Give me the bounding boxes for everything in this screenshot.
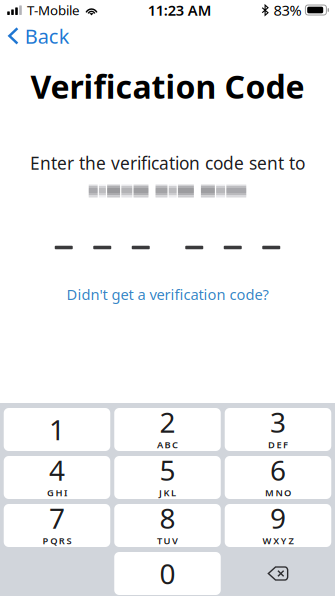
button[interactable]: Delete — [225, 552, 331, 595]
staticText: 7 — [49, 499, 65, 537]
button[interactable]: 2 — [114, 408, 221, 451]
button[interactable]: 6 — [225, 456, 331, 499]
staticText: 8 — [159, 499, 175, 537]
staticText: PQRS — [43, 534, 71, 547]
staticText: 3 — [270, 403, 286, 441]
staticText: DEF — [268, 438, 288, 451]
staticText: ABC — [157, 438, 178, 451]
button[interactable]: 4 — [4, 456, 110, 499]
button[interactable]: 5 — [114, 456, 221, 499]
button[interactable]: 8 — [114, 504, 221, 547]
staticText: GHI — [47, 486, 67, 499]
button[interactable]: 3 — [225, 408, 331, 451]
staticText: 4 — [49, 451, 65, 489]
button[interactable]: 9 — [225, 504, 331, 547]
button[interactable]: 1 — [4, 408, 110, 451]
staticText: MNO — [265, 486, 291, 499]
staticText: JKL — [159, 486, 176, 499]
staticText: WXYZ — [263, 534, 293, 547]
staticText: 5 — [159, 451, 175, 489]
staticText: 2 — [159, 403, 175, 441]
staticText: 11:23 AM — [148, 0, 212, 20]
staticText: 0 — [159, 555, 175, 592]
staticText: 83% — [273, 0, 301, 20]
staticText: 9 — [270, 499, 286, 537]
button[interactable]: Back — [0, 17, 70, 51]
button[interactable]: Didn't get a verification code? — [58, 279, 276, 309]
button[interactable]: 7 — [4, 504, 110, 547]
staticText: Verification Code — [30, 65, 304, 107]
staticText: 1 — [49, 411, 65, 448]
staticText: T-Mobile — [27, 1, 80, 19]
staticText: TUV — [157, 534, 178, 547]
staticText: 6 — [270, 451, 286, 489]
staticText: Enter the verification code sent to — [30, 151, 305, 174]
staticText: Back — [25, 23, 70, 49]
staticText: Didn't get a verification code? — [66, 284, 268, 304]
button[interactable]: 0 — [114, 552, 221, 595]
